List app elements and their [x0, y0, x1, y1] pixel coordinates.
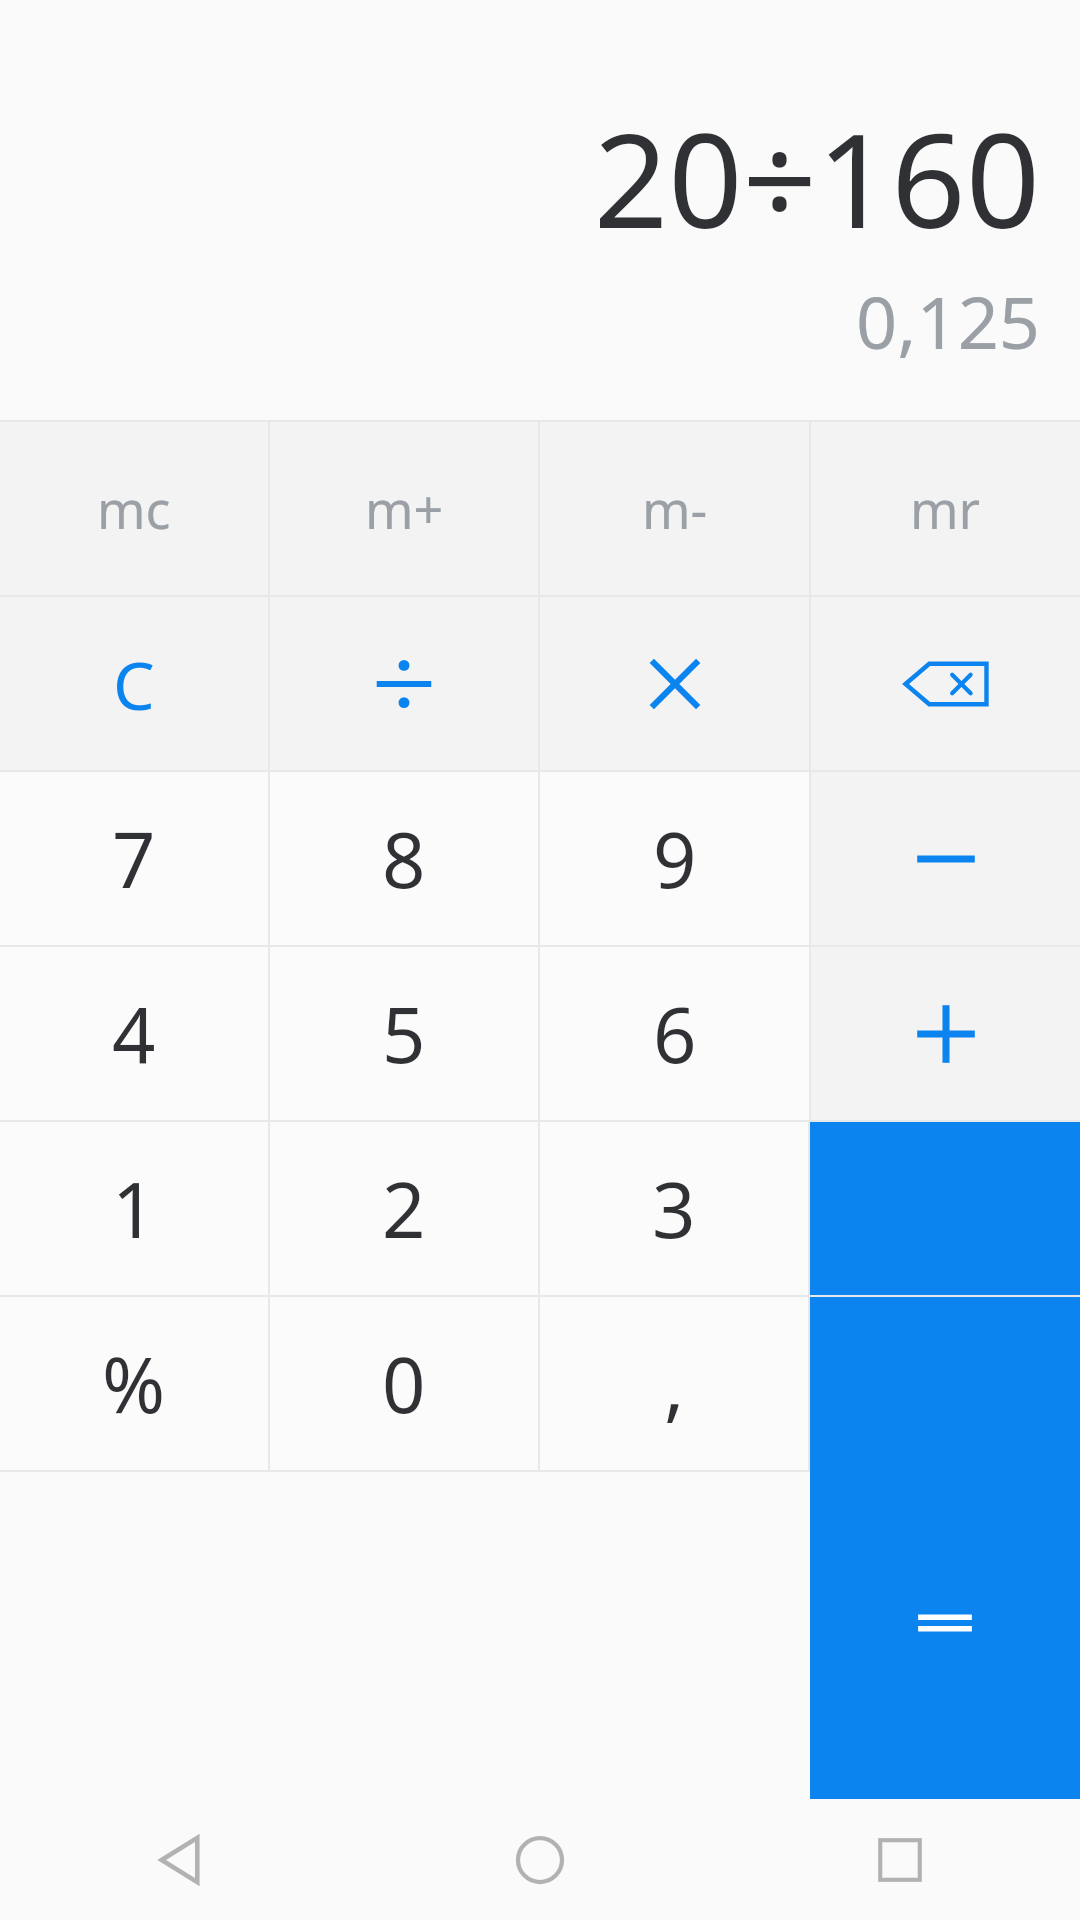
button[interactable]: Divide: [270, 597, 538, 770]
button[interactable]: Home: [360, 1799, 720, 1920]
button[interactable]: Plus: [811, 947, 1080, 1120]
button[interactable]: 0: [270, 1297, 538, 1470]
staticText: C: [113, 639, 155, 729]
staticText: 0,125: [855, 272, 1040, 370]
staticText: m+: [365, 473, 444, 544]
staticText: 7: [112, 807, 156, 911]
staticText: 9: [653, 807, 697, 911]
button[interactable]: 6: [540, 947, 809, 1120]
button[interactable]: Minus: [811, 772, 1080, 945]
staticText: 5: [382, 982, 426, 1086]
staticText: 20÷160: [593, 89, 1040, 266]
staticText: 4: [112, 982, 156, 1086]
button[interactable]: 7: [0, 772, 268, 945]
button[interactable]: 5: [270, 947, 538, 1120]
button[interactable]: mr: [811, 422, 1080, 595]
button[interactable]: 8: [270, 772, 538, 945]
button[interactable]: Back: [0, 1799, 360, 1920]
staticText: mr: [910, 473, 981, 544]
staticText: 0: [382, 1332, 426, 1436]
staticText: 8: [382, 807, 426, 911]
staticText: 3: [652, 1157, 696, 1261]
button[interactable]: %: [0, 1297, 268, 1470]
button[interactable]: Recents: [720, 1799, 1080, 1920]
button[interactable]: mc: [0, 422, 268, 595]
button[interactable]: Multiply: [540, 597, 809, 770]
button[interactable]: C: [0, 597, 268, 770]
button[interactable]: ,: [540, 1297, 808, 1470]
staticText: mc: [97, 473, 171, 544]
button[interactable]: Backspace: [811, 597, 1080, 770]
staticText: 2: [382, 1157, 426, 1261]
button[interactable]: m+: [270, 422, 538, 595]
button[interactable]: m-: [540, 422, 809, 595]
button[interactable]: 3: [540, 1122, 808, 1295]
button[interactable]: 9: [540, 772, 809, 945]
button[interactable]: Equals: [810, 1447, 1080, 1799]
staticText: 1: [112, 1157, 156, 1261]
staticText: %: [102, 1332, 166, 1436]
staticText: m-: [642, 473, 708, 544]
staticText: ,: [664, 1332, 685, 1436]
button[interactable]: 1: [0, 1122, 268, 1295]
button[interactable]: 4: [0, 947, 268, 1120]
button[interactable]: 2: [270, 1122, 538, 1295]
staticText: 6: [653, 982, 697, 1086]
